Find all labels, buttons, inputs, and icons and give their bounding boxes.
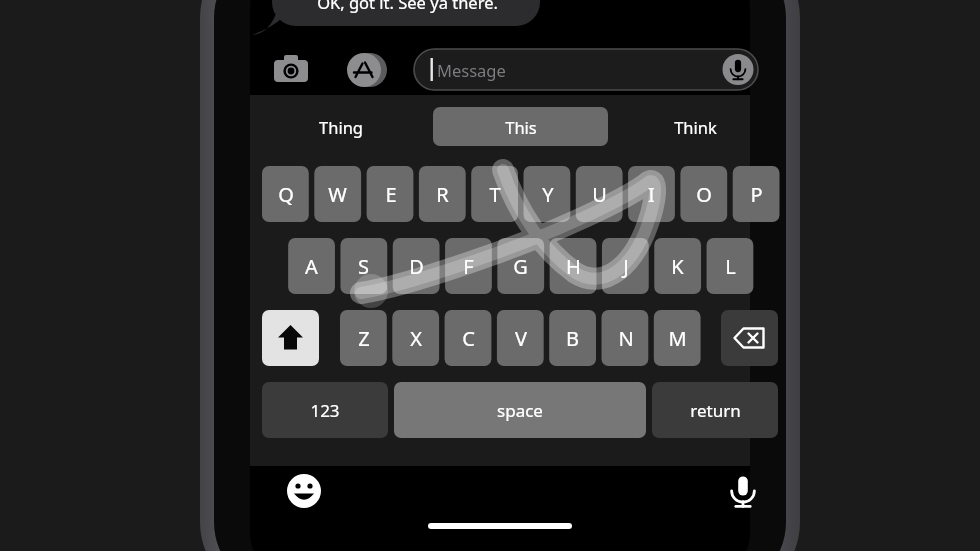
button[interactable]: space [394, 382, 646, 438]
button[interactable]: Q [262, 166, 309, 222]
staticText: D [409, 253, 424, 280]
button[interactable]: L [707, 238, 754, 294]
button[interactable]: H [550, 238, 597, 294]
button[interactable]: S [340, 238, 387, 294]
button[interactable]: I [628, 166, 675, 222]
button[interactable]: E [367, 166, 414, 222]
button[interactable]: G [497, 238, 544, 294]
button[interactable]: Z [340, 310, 387, 366]
button[interactable]: X [392, 310, 439, 366]
staticText: J [623, 253, 629, 280]
button[interactable]: W [314, 166, 361, 222]
staticText: This [505, 116, 537, 138]
button[interactable]: Dictate [722, 54, 754, 86]
staticText: U [592, 181, 607, 208]
button[interactable]: This [433, 108, 608, 145]
staticText: space [497, 399, 543, 422]
staticText: Think [674, 116, 717, 138]
button[interactable]: J [602, 238, 649, 294]
button[interactable]: Emoji [286, 473, 322, 509]
button[interactable]: Backspace [721, 310, 778, 366]
staticText: return [690, 399, 741, 422]
staticText: Y [542, 181, 554, 208]
button[interactable]: N [602, 310, 649, 366]
button[interactable]: return [652, 382, 778, 438]
staticText: 123 [310, 399, 340, 422]
button[interactable]: V [497, 310, 544, 366]
button[interactable]: D [393, 238, 440, 294]
staticText: L [725, 253, 736, 280]
staticText: X [410, 325, 422, 352]
staticText: I [648, 181, 655, 208]
button[interactable]: F [445, 238, 492, 294]
button[interactable]: P [733, 166, 780, 222]
button[interactable]: U [576, 166, 623, 222]
button[interactable]: R [419, 166, 466, 222]
button[interactable]: K [654, 238, 701, 294]
staticText: Q [278, 181, 294, 208]
staticText: T [489, 181, 501, 208]
staticText: A [305, 253, 318, 280]
staticText: F [463, 253, 474, 280]
staticText: V [515, 325, 527, 352]
staticText: W [328, 181, 347, 208]
staticText: K [671, 253, 684, 280]
button[interactable]: C [445, 310, 492, 366]
staticText: C [462, 325, 475, 352]
button[interactable]: A [288, 238, 335, 294]
staticText: O [696, 181, 712, 208]
button[interactable]: Thing [296, 108, 386, 145]
staticText: OK, got it. See ya there. [317, 0, 498, 13]
button[interactable]: B [549, 310, 596, 366]
button[interactable]: O [680, 166, 727, 222]
button[interactable]: Camera [274, 52, 310, 88]
staticText: Message [437, 59, 506, 81]
staticText: R [436, 181, 449, 208]
staticText: S [358, 253, 369, 280]
staticText: B [566, 325, 579, 352]
staticText: G [513, 253, 528, 280]
staticText: Z [358, 325, 370, 352]
button[interactable]: Apps [345, 52, 383, 88]
button[interactable]: M [654, 310, 701, 366]
staticText: Thing [319, 116, 363, 138]
button[interactable]: 123 [262, 382, 388, 438]
staticText: H [566, 253, 581, 280]
staticText: E [385, 181, 397, 208]
button[interactable]: Voice input [725, 473, 761, 509]
button[interactable]: T [471, 166, 518, 222]
staticText: M [668, 325, 687, 352]
staticText: N [618, 325, 634, 352]
staticText: P [750, 181, 763, 208]
button[interactable]: Think [650, 108, 740, 145]
button[interactable]: Shift [262, 310, 319, 366]
button[interactable]: Y [524, 166, 571, 222]
